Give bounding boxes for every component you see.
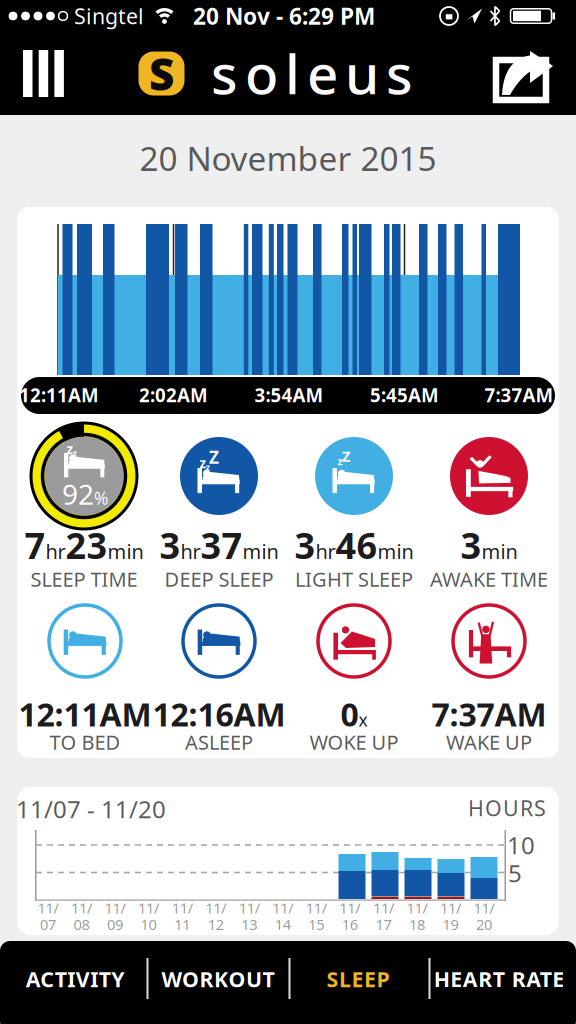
staticText: 7 [24, 521, 45, 569]
staticText: 20 Nov - 6:29 PM [193, 1, 375, 31]
staticText: 5:45AM [370, 383, 439, 407]
staticText: 10 [141, 914, 157, 934]
staticText: 11/ [205, 898, 226, 917]
staticText: 11/ [473, 898, 494, 917]
staticText: 11/ [172, 898, 193, 917]
staticText: 11/ [71, 898, 92, 917]
staticText: HEART RATE [434, 965, 564, 993]
staticText: Z [209, 445, 219, 468]
staticText: 16 [342, 914, 358, 934]
staticText: 12:11AM [19, 383, 99, 407]
staticText: 7:37AM [484, 383, 553, 407]
staticText: 15 [308, 914, 324, 934]
staticText: soleus [211, 37, 413, 109]
staticText: 17 [375, 914, 391, 934]
staticText: 0 [340, 693, 358, 735]
staticText: 2:02AM [139, 383, 208, 407]
staticText: min [377, 538, 413, 564]
staticText: 11/ [239, 898, 260, 917]
staticText: 12:16AM [152, 693, 285, 735]
button[interactable]: WORKOUT [150, 944, 286, 1014]
staticText: 11/ [306, 898, 327, 917]
staticText: 08 [73, 914, 89, 934]
staticText: ASLEEP [185, 729, 253, 755]
staticText: 11/ [406, 898, 427, 917]
staticText: 11 [174, 914, 190, 934]
staticText: 11/07 - 11/20 [16, 793, 166, 825]
staticText: 20 [476, 914, 492, 934]
staticText: SLEEP TIME [30, 566, 137, 592]
staticText: 11/ [272, 898, 293, 917]
button[interactable]: SLEEP [291, 944, 425, 1014]
staticText: 09 [107, 914, 123, 934]
staticText: min [481, 538, 517, 564]
button[interactable] [490, 39, 556, 111]
staticText: 46 [335, 521, 377, 569]
staticText: 5 [508, 857, 522, 889]
staticText: 11/ [138, 898, 159, 917]
staticText: HOURS [468, 794, 546, 822]
staticText: DEEP SLEEP [164, 566, 273, 592]
staticText: Z [342, 446, 350, 466]
staticText: 12 [208, 914, 224, 934]
staticText: z [337, 454, 342, 468]
staticText: % [94, 487, 108, 510]
staticText: z [199, 454, 206, 472]
staticText: TO BED [49, 729, 120, 755]
button[interactable]: HEART RATE [428, 944, 570, 1014]
staticText: LIGHT SLEEP [295, 566, 413, 592]
staticText: 11/ [440, 898, 461, 917]
staticText: z [205, 461, 210, 473]
staticText: 11/ [339, 898, 360, 917]
staticText: 92 [62, 475, 94, 513]
staticText: Singtel [74, 2, 144, 30]
button[interactable] [0, 32, 90, 115]
staticText: 14 [275, 914, 291, 934]
staticText: 3 [460, 521, 481, 569]
staticText: 11/ [373, 898, 394, 917]
staticText: 7:37AM [431, 693, 546, 735]
staticText: S [149, 44, 174, 103]
staticText: 11/ [37, 898, 58, 917]
staticText: 19 [442, 914, 458, 934]
staticText: z [66, 440, 73, 458]
staticText: ACTIVITY [26, 965, 124, 993]
staticText: WOKE UP [309, 729, 398, 755]
staticText: hr [180, 538, 200, 564]
staticText: 12:11AM [18, 693, 151, 735]
staticText: 11/ [105, 898, 126, 917]
staticText: WAKE UP [446, 729, 532, 755]
staticText: 07 [40, 914, 56, 934]
staticText: hr [315, 538, 335, 564]
staticText: 3 [159, 521, 180, 569]
staticText: min [242, 538, 278, 564]
staticText: min [107, 538, 143, 564]
staticText: 13 [241, 914, 257, 934]
staticText: 18 [409, 914, 425, 934]
staticText: 37 [200, 521, 242, 569]
staticText: SLEEP [326, 965, 389, 993]
staticText: z [72, 447, 77, 459]
staticText: 20 November 2015 [139, 136, 436, 180]
staticText: 23 [65, 521, 107, 569]
staticText: hr [45, 538, 65, 564]
button[interactable]: ACTIVITY [5, 944, 145, 1014]
staticText: x [358, 708, 367, 731]
staticText: WORKOUT [161, 965, 274, 993]
staticText: 10 [507, 829, 535, 861]
staticText: 3 [294, 521, 315, 569]
staticText: AWAKE TIME [430, 566, 548, 592]
staticText: 3:54AM [254, 383, 323, 407]
